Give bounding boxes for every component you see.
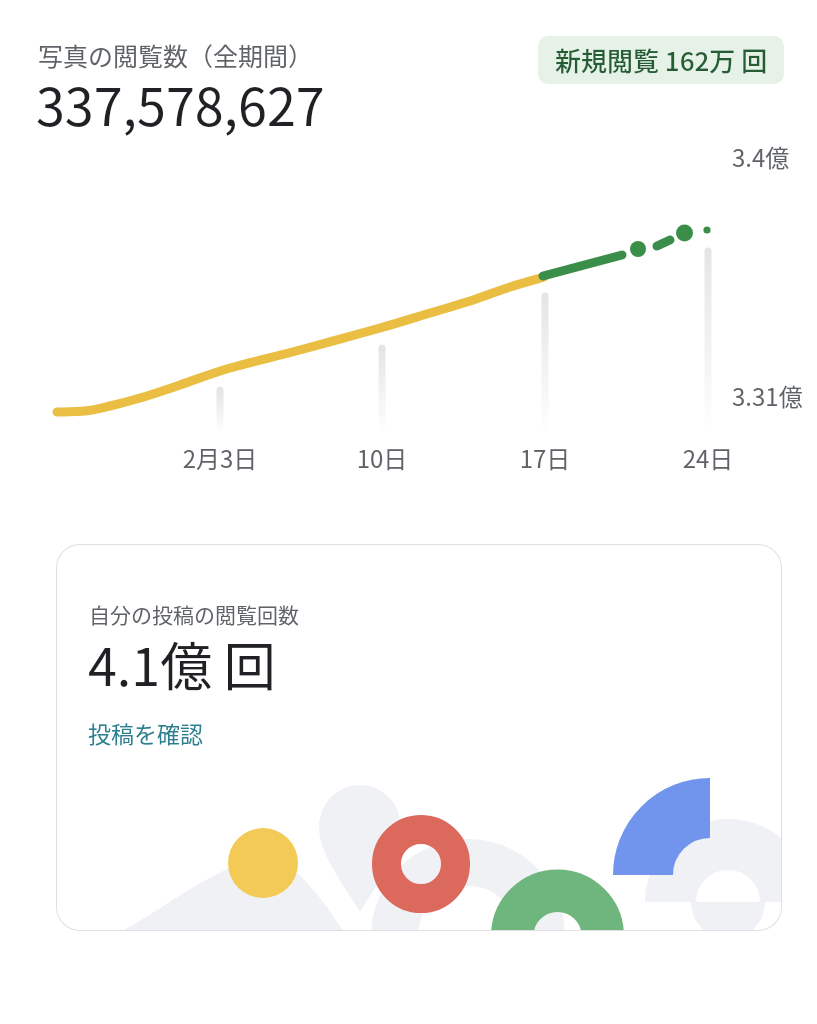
staticText: 自分の投稿の閲覧回数 — [89, 599, 299, 629]
staticText: 写真の閲覧数（全期間） — [38, 37, 314, 73]
staticText: 10日 — [302, 440, 462, 475]
staticText: 投稿を確認 — [88, 716, 203, 749]
staticText: 4.1億 回 — [88, 626, 276, 701]
staticText: 新規閲覧 162万 回 — [555, 41, 768, 79]
staticText: 2月3日 — [140, 440, 300, 475]
button[interactable]: 自分の投稿の閲覧回数 — [56, 544, 782, 931]
staticText: 17日 — [465, 440, 625, 475]
staticText: 24日 — [628, 440, 788, 475]
staticText: 3.4億 — [732, 139, 790, 174]
staticText: 3.31億 — [732, 378, 803, 413]
staticText: 337,578,627 — [36, 66, 325, 141]
button[interactable]: 新規閲覧 162万 回 — [538, 36, 784, 84]
button[interactable]: 投稿を確認 — [88, 716, 203, 749]
